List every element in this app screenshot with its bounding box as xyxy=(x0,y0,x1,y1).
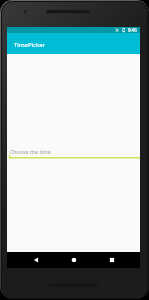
staticText: TimePicker xyxy=(14,41,46,49)
staticText: 9:46 xyxy=(128,27,137,33)
button[interactable]: Recent apps xyxy=(107,255,117,265)
button[interactable]: Back xyxy=(31,255,41,265)
button[interactable]: Choose the time xyxy=(9,148,140,159)
staticText: Choose the time xyxy=(10,148,51,155)
button[interactable]: Home xyxy=(69,255,79,265)
